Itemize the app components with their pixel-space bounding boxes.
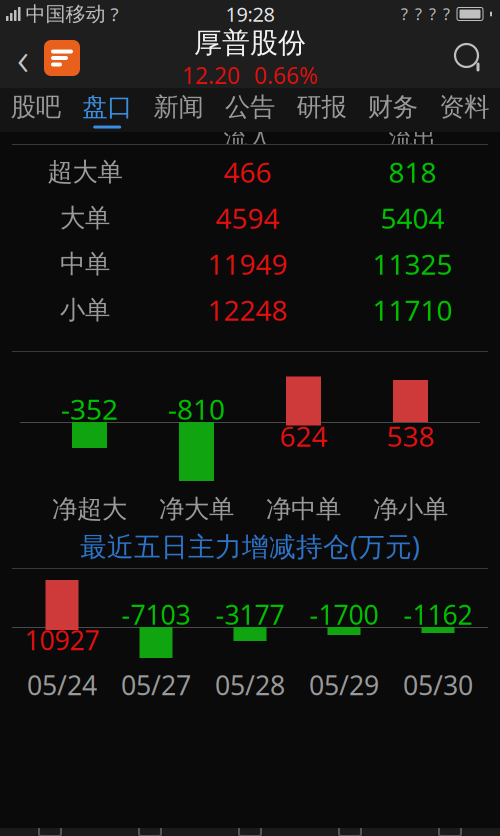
staticText: 818: [388, 153, 436, 191]
button[interactable]: 研报: [286, 88, 357, 132]
staticText: 超大单: [47, 156, 122, 187]
staticText: ?: [415, 3, 422, 25]
staticText: 流入: [223, 123, 271, 153]
staticText: 624: [279, 417, 327, 455]
staticText: 新闻: [154, 91, 204, 122]
staticText: 05/28: [215, 667, 285, 703]
staticText: 流出: [388, 123, 436, 153]
staticText: 4594: [215, 199, 279, 237]
staticText: 净超大: [52, 493, 127, 524]
staticText: 中国移动: [25, 2, 105, 26]
staticText: 10927: [24, 622, 99, 658]
staticText: 05/30: [403, 667, 473, 703]
button[interactable]: Tab 3: [200, 828, 300, 836]
staticText: 资料: [439, 91, 489, 122]
staticText: 最近五日主力增减持仓(万元): [80, 528, 420, 564]
staticText: ?: [401, 3, 408, 25]
staticText: 11710: [372, 291, 452, 329]
button[interactable]: Tab 4: [300, 828, 400, 836]
staticText: ?: [429, 3, 436, 25]
staticText: 0.66%: [254, 60, 318, 90]
staticText: ?: [443, 3, 450, 25]
staticText: ‹: [17, 28, 29, 88]
staticText: 05/24: [27, 667, 97, 703]
staticText: 11325: [372, 245, 452, 283]
staticText: 05/29: [309, 667, 379, 703]
button[interactable]: 新闻: [143, 88, 214, 132]
staticText: 股吧: [11, 91, 61, 122]
staticText: 12.20: [182, 60, 240, 90]
staticText: 538: [386, 417, 434, 455]
staticText: 净小单: [373, 493, 448, 524]
button[interactable]: Tab 2: [100, 828, 200, 836]
staticText: 财务: [368, 91, 418, 122]
button[interactable]: Back: [6, 33, 40, 83]
staticText: 466: [223, 153, 271, 191]
staticText: -1162: [403, 597, 472, 632]
staticText: 净中单: [266, 493, 341, 524]
staticText: 19:28: [225, 1, 274, 27]
button[interactable]: 盘口: [71, 88, 143, 132]
staticText: ?: [110, 2, 118, 26]
staticText: 11949: [207, 245, 287, 283]
staticText: -1700: [309, 597, 378, 632]
button[interactable]: 财务: [357, 88, 428, 132]
staticText: 5404: [380, 199, 444, 237]
button[interactable]: Tab 5: [400, 828, 500, 836]
staticText: 中单: [60, 248, 110, 279]
staticText: -7103: [121, 597, 190, 632]
staticText: 净大单: [159, 493, 234, 524]
staticText: 小单: [60, 294, 110, 325]
staticText: 盘口: [82, 91, 132, 122]
staticText: 12248: [207, 291, 287, 329]
staticText: 05/27: [121, 667, 191, 703]
button[interactable]: Search: [444, 33, 494, 83]
staticText: -810: [168, 390, 225, 428]
staticText: 厚普股份: [194, 26, 306, 60]
button[interactable]: 公告: [214, 88, 286, 132]
staticText: 大单: [60, 202, 110, 233]
button[interactable]: App home: [40, 33, 84, 83]
button[interactable]: 股吧: [0, 88, 71, 132]
staticText: 公告: [225, 91, 275, 122]
button[interactable]: 资料: [428, 88, 500, 132]
staticText: 研报: [296, 91, 346, 122]
button[interactable]: Tab 1: [0, 828, 100, 836]
staticText: -3177: [215, 597, 284, 632]
staticText: -352: [61, 390, 118, 428]
